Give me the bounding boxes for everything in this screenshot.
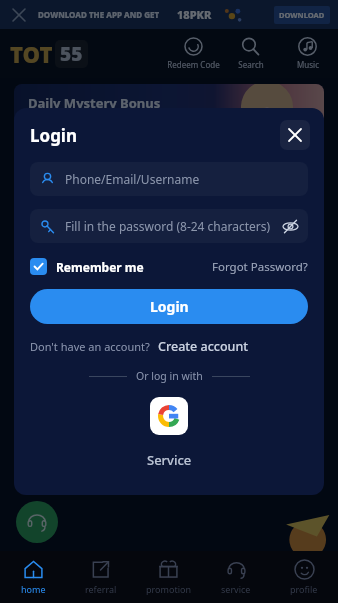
button[interactable]: promotion <box>134 551 202 603</box>
staticText: promotion <box>146 583 191 595</box>
staticText: Search <box>238 59 264 70</box>
staticText: home <box>21 583 46 595</box>
staticText: Remember me <box>56 259 144 275</box>
staticText: 18PKR <box>177 7 212 22</box>
button[interactable]: home <box>0 551 67 603</box>
button[interactable]: Phone/Email/Username <box>30 162 308 196</box>
button[interactable]: Fill in the password (8-24 characters) <box>30 209 308 243</box>
button[interactable]: Forgot Password? <box>212 259 308 275</box>
staticText: TOT <box>10 39 53 69</box>
staticText: Daily Mystery Bonus <box>28 94 161 112</box>
staticText: Don't have an account? <box>30 339 150 354</box>
button[interactable]: Remember me <box>30 258 144 275</box>
button[interactable]: Create account <box>158 338 249 355</box>
staticText: Forgot Password? <box>212 259 308 275</box>
staticText: profile <box>290 583 318 595</box>
staticText: 55 <box>60 41 83 67</box>
staticText: referral <box>85 583 117 595</box>
button[interactable]: Service <box>147 451 192 469</box>
staticText: service <box>221 583 251 595</box>
button[interactable]: Sign in with Google <box>150 397 188 435</box>
button[interactable]: Search <box>222 34 279 73</box>
button[interactable]: Support <box>16 501 58 543</box>
button[interactable]: profile <box>270 551 338 603</box>
staticText: Login <box>150 297 189 316</box>
button[interactable]: Music <box>279 34 336 73</box>
button[interactable]: referral <box>67 551 134 603</box>
staticText: Fill in the password (8-24 characters) <box>65 218 277 234</box>
button[interactable]: Redeem Code <box>165 34 222 73</box>
staticText: Redeem Code <box>167 59 220 70</box>
staticText: DOWNLOAD THE APP AND GET <box>38 9 160 20</box>
staticText: Music <box>297 59 319 70</box>
staticText: Login <box>30 124 78 147</box>
button[interactable]: service <box>202 551 270 603</box>
staticText: Phone/Email/Username <box>65 171 298 187</box>
staticText: Service <box>147 451 192 469</box>
button[interactable]: Login <box>30 289 308 324</box>
staticText: Or log in with <box>136 369 203 383</box>
button[interactable]: Close <box>280 120 310 150</box>
button[interactable]: DOWNLOAD <box>274 6 330 24</box>
staticText: DOWNLOAD <box>279 10 325 20</box>
staticText: Create account <box>158 338 249 355</box>
